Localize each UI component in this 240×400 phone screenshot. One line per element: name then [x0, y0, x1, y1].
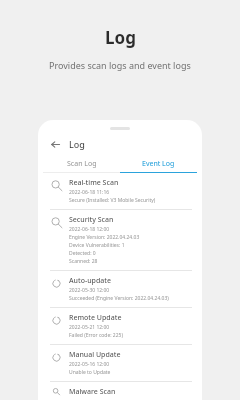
staticText: Detected: 0 — [69, 250, 96, 257]
button[interactable]: Scan Log — [43, 155, 120, 172]
staticText: Remote Update — [69, 313, 122, 323]
staticText: Secure (Installed: V3 Mobile Security) — [69, 197, 156, 204]
button[interactable]: Real-time Scan — [43, 173, 197, 209]
staticText: 2022-05-16 12:00 — [69, 361, 110, 368]
staticText: Auto-update — [69, 276, 111, 286]
staticText: Engine Version: 2022.04.24.03 — [69, 234, 140, 241]
staticText: Scanned: 28 — [69, 258, 98, 265]
staticText: Event Log — [142, 159, 175, 169]
staticText: 2022-06-18 12:00 — [69, 226, 110, 233]
button[interactable]: Security Scan — [43, 210, 197, 270]
staticText: Security Scan — [69, 215, 114, 225]
staticText: Succeeded (Engine Version: 2022.04.24.03… — [69, 295, 169, 302]
staticText: Failed (Error code: 225) — [69, 332, 123, 339]
staticText: 2022-06-18 11:16 — [69, 189, 110, 196]
staticText: Unable to Update — [69, 369, 111, 376]
staticText: Scan Log — [67, 159, 97, 169]
staticText: Log — [105, 26, 136, 49]
button[interactable]: Event Log — [120, 155, 197, 172]
button[interactable]: Auto-update — [43, 271, 197, 307]
staticText: Log — [69, 138, 85, 150]
staticText: Device Vulnerabilities: 1 — [69, 242, 125, 249]
staticText: Real-time Scan — [69, 178, 119, 188]
staticText: Malware Scan — [69, 387, 116, 395]
button[interactable]: Back — [47, 136, 63, 152]
button[interactable]: Malware Scan — [43, 382, 197, 400]
button[interactable]: Manual Update — [43, 345, 197, 381]
staticText: Provides scan logs and event logs — [49, 59, 191, 71]
button[interactable]: Remote Update — [43, 308, 197, 344]
staticText: 2022-05-30 12:00 — [69, 287, 110, 294]
staticText: 2022-05-21 12:00 — [69, 324, 110, 331]
staticText: Manual Update — [69, 350, 121, 360]
